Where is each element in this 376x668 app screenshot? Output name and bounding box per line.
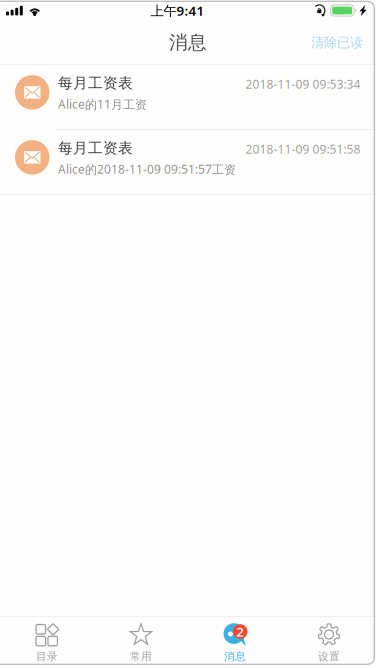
staticText: 设置: [318, 650, 340, 663]
button[interactable]: 设置: [282, 617, 376, 664]
staticText: 常用: [130, 650, 152, 663]
staticText: 2018-11-09 09:53:34: [245, 76, 360, 92]
staticText: 2: [236, 623, 244, 640]
button[interactable]: 清除已读: [298, 21, 376, 64]
button[interactable]: 2: [188, 617, 282, 664]
button[interactable]: 目录: [0, 617, 94, 664]
staticText: 2018-11-09 09:51:58: [245, 141, 360, 157]
staticText: 清除已读: [311, 34, 363, 51]
staticText: 每月工资表: [58, 74, 133, 92]
staticText: 上午9:41: [150, 2, 204, 19]
staticText: 每月工资表: [58, 139, 133, 157]
staticText: 消息: [224, 650, 246, 663]
button[interactable]: 每月工资表: [0, 130, 376, 195]
staticText: Alice的2018-11-09 09:51:57工资: [58, 161, 236, 177]
staticText: 消息: [169, 31, 207, 54]
button[interactable]: 每月工资表: [0, 65, 376, 130]
staticText: 目录: [36, 650, 58, 663]
button[interactable]: 常用: [94, 617, 188, 664]
staticText: Alice的11月工资: [58, 96, 147, 112]
